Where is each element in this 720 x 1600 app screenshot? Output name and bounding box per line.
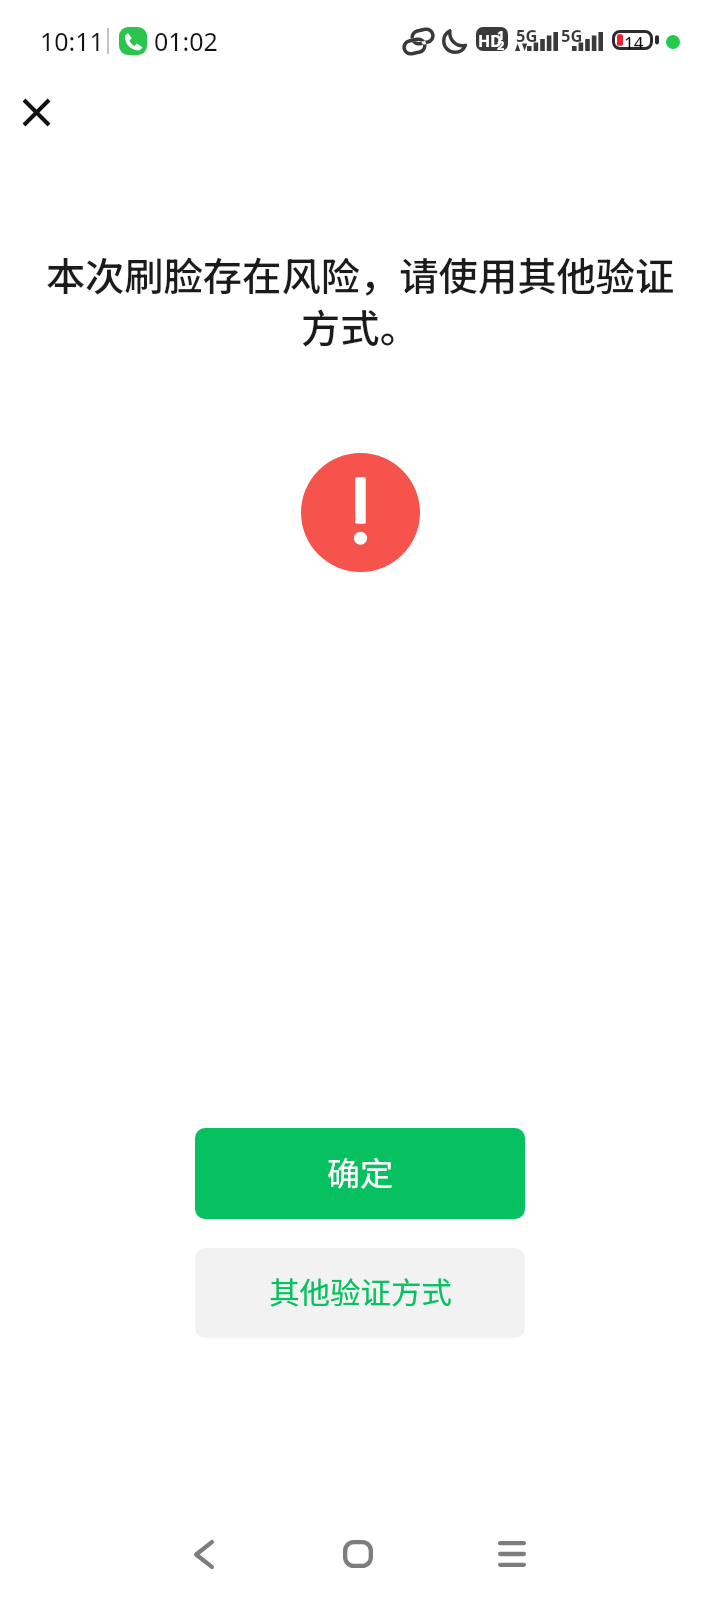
staticText: 14	[624, 31, 644, 51]
staticText: 5G	[561, 24, 583, 46]
button[interactable]: 其他验证方式	[195, 1248, 525, 1338]
staticText: 10:11	[40, 24, 104, 58]
staticText: 确定	[327, 1148, 393, 1196]
button[interactable]: Close	[7, 83, 65, 141]
button[interactable]: Back	[174, 1524, 234, 1584]
staticText: 其他验证方式	[269, 1269, 452, 1313]
staticText: HD	[478, 30, 502, 51]
button[interactable]: Recent apps	[482, 1524, 542, 1584]
staticText: 2	[497, 36, 505, 51]
staticText: 01:02	[154, 24, 218, 58]
staticText: 本次刷脸存在风险，请使用其他验证 方式。	[22, 245, 698, 354]
staticText: 1	[497, 27, 505, 44]
button[interactable]: Home	[328, 1524, 388, 1584]
button[interactable]: 确定	[195, 1128, 525, 1219]
staticText: 5G	[516, 24, 538, 46]
